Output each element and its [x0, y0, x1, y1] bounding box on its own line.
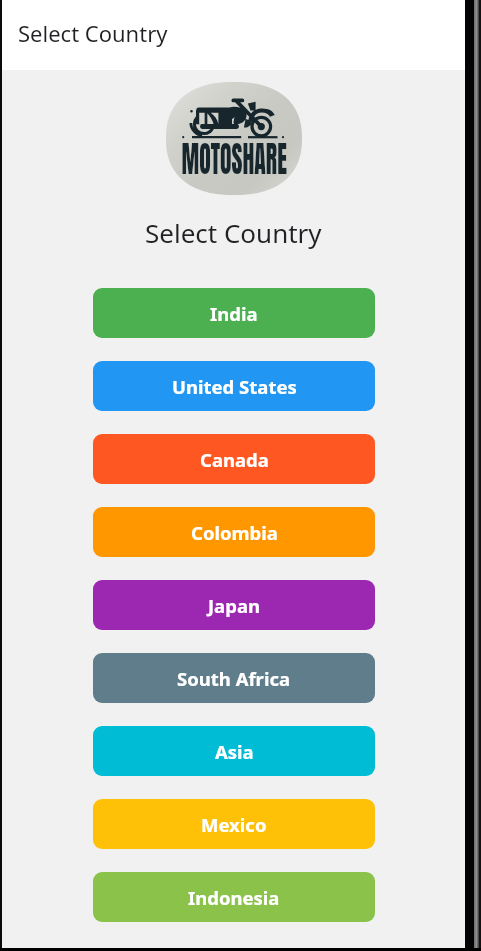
button[interactable]: United States	[93, 361, 375, 411]
staticText: India	[210, 301, 258, 326]
button[interactable]: Colombia	[93, 507, 375, 557]
button[interactable]: Asia	[93, 726, 375, 776]
staticText: Canada	[200, 447, 269, 472]
button[interactable]: Mexico	[93, 799, 375, 849]
staticText: Select Country	[145, 215, 322, 250]
staticText: South Africa	[177, 666, 291, 691]
button[interactable]: Indonesia	[93, 872, 375, 922]
staticText: MOTOSHARE	[181, 132, 287, 186]
button[interactable]: South Africa	[93, 653, 375, 703]
button[interactable]: Select Country	[0, 0, 467, 70]
button[interactable]: Canada	[93, 434, 375, 484]
staticText: Select Country	[18, 18, 168, 48]
staticText: United States	[172, 374, 297, 399]
staticText: Japan	[208, 593, 261, 618]
staticText: Mexico	[201, 812, 267, 837]
staticText: Colombia	[191, 520, 278, 545]
button[interactable]: Japan	[93, 580, 375, 630]
staticText: Indonesia	[188, 885, 280, 910]
staticText: Asia	[215, 739, 254, 764]
button[interactable]: India	[93, 288, 375, 338]
